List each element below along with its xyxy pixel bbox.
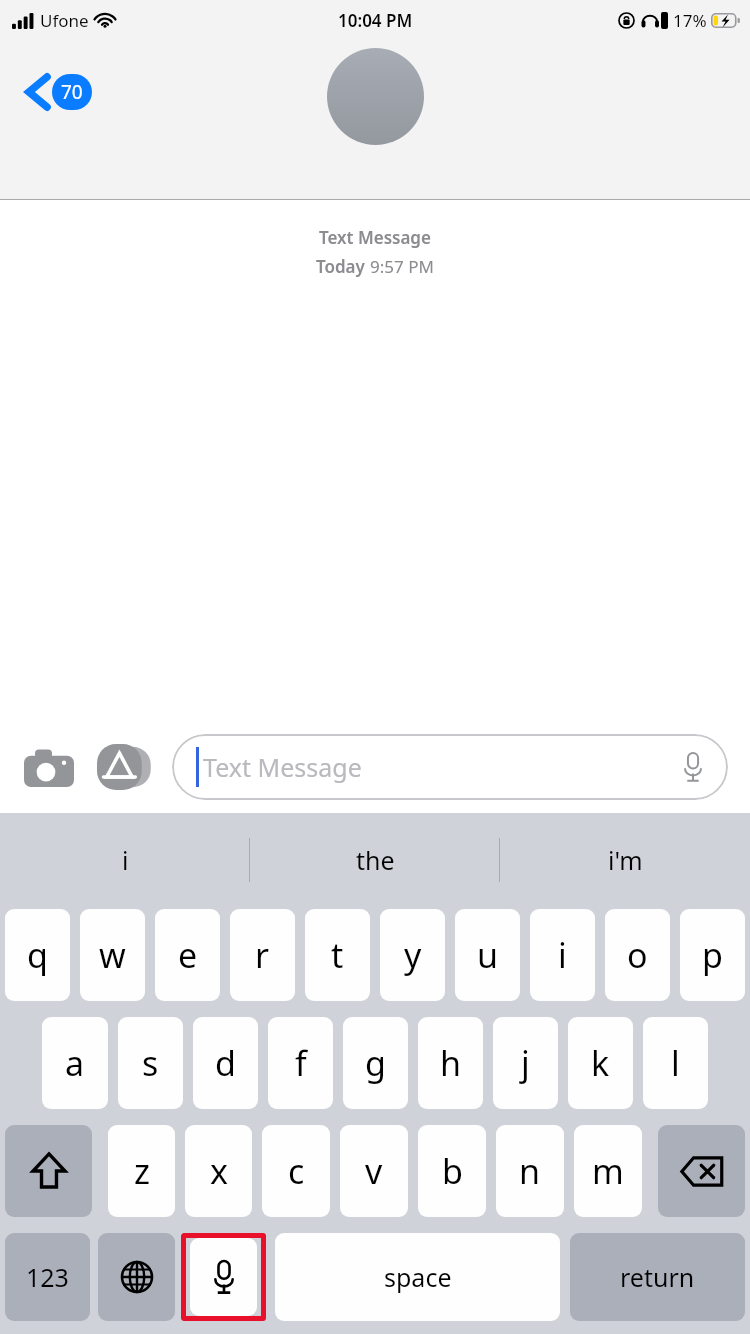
staticText: n bbox=[519, 1148, 541, 1194]
staticText: return bbox=[620, 1260, 695, 1294]
staticText: f bbox=[295, 1040, 307, 1086]
button[interactable]: j bbox=[493, 1017, 558, 1109]
button[interactable]: Text Message bbox=[172, 734, 728, 800]
button[interactable]: k bbox=[568, 1017, 633, 1109]
button[interactable]: m bbox=[574, 1125, 642, 1217]
button[interactable]: i bbox=[530, 909, 595, 1001]
staticText: s bbox=[142, 1040, 159, 1086]
button[interactable]: the bbox=[250, 813, 500, 906]
staticText: 10:04 PM bbox=[338, 9, 413, 32]
staticText: q bbox=[27, 932, 48, 978]
staticText: y bbox=[404, 932, 422, 978]
staticText: g bbox=[365, 1040, 386, 1086]
button[interactable]: l bbox=[643, 1017, 708, 1109]
staticText: i bbox=[558, 932, 567, 978]
staticText: b bbox=[442, 1148, 463, 1194]
staticText: j bbox=[521, 1040, 530, 1086]
button[interactable]: Camera bbox=[22, 740, 76, 794]
staticText: c bbox=[288, 1148, 305, 1194]
button[interactable]: a bbox=[42, 1017, 108, 1109]
staticText: l bbox=[671, 1040, 680, 1086]
button[interactable]: Backspace bbox=[658, 1125, 745, 1217]
staticText: v bbox=[365, 1148, 383, 1194]
staticText: h bbox=[440, 1040, 462, 1086]
button[interactable]: Back, 70 unread bbox=[26, 72, 92, 112]
staticText: x bbox=[210, 1148, 228, 1194]
staticText: Today bbox=[316, 255, 370, 278]
button[interactable]: d bbox=[193, 1017, 258, 1109]
staticText: z bbox=[134, 1148, 150, 1194]
staticText: k bbox=[591, 1040, 610, 1086]
button[interactable]: g bbox=[343, 1017, 408, 1109]
button[interactable]: z bbox=[108, 1125, 175, 1217]
staticText: space bbox=[384, 1260, 452, 1294]
button[interactable]: Contact avatar bbox=[327, 48, 424, 145]
button[interactable]: e bbox=[155, 909, 220, 1001]
button[interactable]: return bbox=[570, 1233, 745, 1321]
staticText: t bbox=[331, 932, 344, 978]
button[interactable]: u bbox=[455, 909, 520, 1001]
button[interactable]: Shift bbox=[5, 1125, 92, 1217]
staticText: i bbox=[122, 843, 129, 877]
button[interactable]: r bbox=[230, 909, 295, 1001]
button[interactable]: App Store apps bbox=[96, 738, 154, 796]
button[interactable]: f bbox=[268, 1017, 333, 1109]
button[interactable]: s bbox=[118, 1017, 183, 1109]
button[interactable]: space bbox=[275, 1233, 560, 1321]
button[interactable]: Dictation bbox=[190, 1238, 257, 1316]
staticText: i'm bbox=[608, 843, 643, 877]
staticText: 9:57 PM bbox=[370, 255, 434, 278]
button[interactable]: w bbox=[80, 909, 145, 1001]
button[interactable]: q bbox=[5, 909, 70, 1001]
staticText: a bbox=[65, 1040, 85, 1086]
staticText: Text Message bbox=[203, 750, 362, 784]
button[interactable]: c bbox=[262, 1125, 330, 1217]
button[interactable]: h bbox=[418, 1017, 483, 1109]
staticText: m bbox=[592, 1148, 624, 1194]
button[interactable]: x bbox=[185, 1125, 252, 1217]
staticText: w bbox=[99, 932, 126, 978]
staticText: p bbox=[702, 932, 723, 978]
button[interactable]: y bbox=[380, 909, 445, 1001]
staticText: 70 bbox=[61, 79, 83, 105]
button[interactable]: i bbox=[0, 813, 250, 906]
button[interactable]: Dictate message bbox=[676, 750, 710, 784]
staticText: 17% bbox=[673, 9, 707, 32]
button[interactable]: 123 bbox=[5, 1233, 90, 1321]
button[interactable]: Switch keyboard bbox=[98, 1233, 175, 1321]
staticText: u bbox=[477, 932, 499, 978]
staticText: Ufone bbox=[40, 9, 89, 32]
button[interactable]: v bbox=[340, 1125, 408, 1217]
staticText: the bbox=[356, 843, 395, 877]
staticText: e bbox=[178, 932, 198, 978]
staticText: d bbox=[215, 1040, 236, 1086]
button[interactable]: b bbox=[418, 1125, 486, 1217]
staticText: o bbox=[627, 932, 648, 978]
button[interactable]: p bbox=[680, 909, 745, 1001]
staticText: Text Message bbox=[319, 226, 431, 249]
button[interactable]: i'm bbox=[500, 813, 750, 906]
staticText: 123 bbox=[26, 1260, 69, 1294]
button[interactable]: n bbox=[496, 1125, 564, 1217]
staticText: r bbox=[255, 932, 270, 978]
button[interactable]: t bbox=[305, 909, 370, 1001]
button[interactable]: o bbox=[605, 909, 670, 1001]
